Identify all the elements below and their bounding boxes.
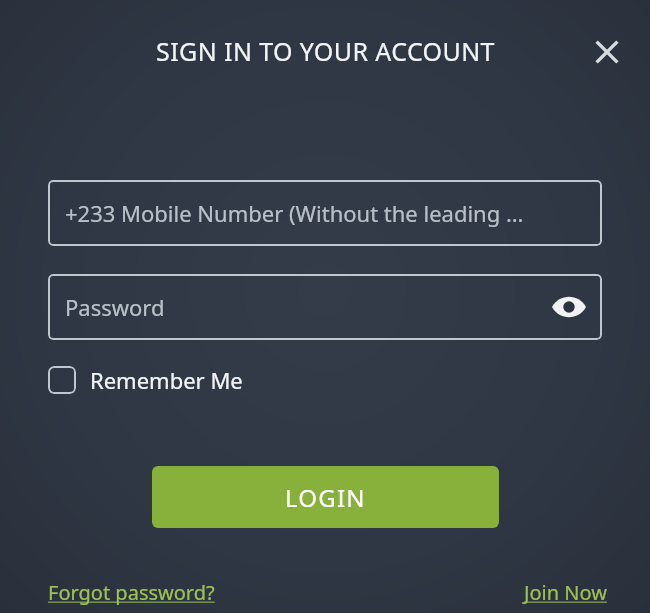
staticText: Forgot password? [48,579,215,606]
button[interactable]: Password [48,274,602,340]
button[interactable]: Close [588,33,626,71]
button[interactable]: Forgot password? [48,579,215,606]
staticText: Join Now [524,579,607,606]
button[interactable]: LOGIN [152,466,499,528]
staticText: LOGIN [285,481,366,514]
staticText: Remember Me [90,365,243,395]
button[interactable]: Join Now [524,579,607,606]
staticText: SIGN IN TO YOUR ACCOUNT [156,34,495,68]
button[interactable]: Show password [548,286,590,328]
staticText: +233 Mobile Number (Without the leading … [65,198,524,228]
button[interactable]: Remember Me [48,362,243,398]
staticText: Password [65,292,165,322]
button[interactable]: +233 Mobile Number (Without the leading … [48,180,602,246]
